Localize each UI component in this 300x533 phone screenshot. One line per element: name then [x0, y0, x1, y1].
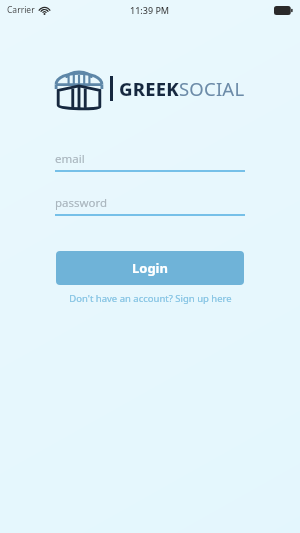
staticText: password — [55, 195, 108, 211]
staticText: email — [55, 151, 85, 167]
button[interactable]: email — [55, 148, 245, 172]
button[interactable]: password — [55, 192, 245, 216]
staticText: SOCIAL — [179, 76, 245, 101]
staticText: 11:39 PM — [130, 4, 170, 16]
staticText: GREEK — [119, 76, 179, 101]
button[interactable]: Don't have an account? Sign up here — [63, 290, 238, 307]
staticText: Login — [132, 259, 168, 277]
staticText: Don't have an account? Sign up here — [69, 292, 232, 305]
staticText: Carrier — [7, 4, 35, 16]
button[interactable]: Login — [56, 251, 244, 285]
